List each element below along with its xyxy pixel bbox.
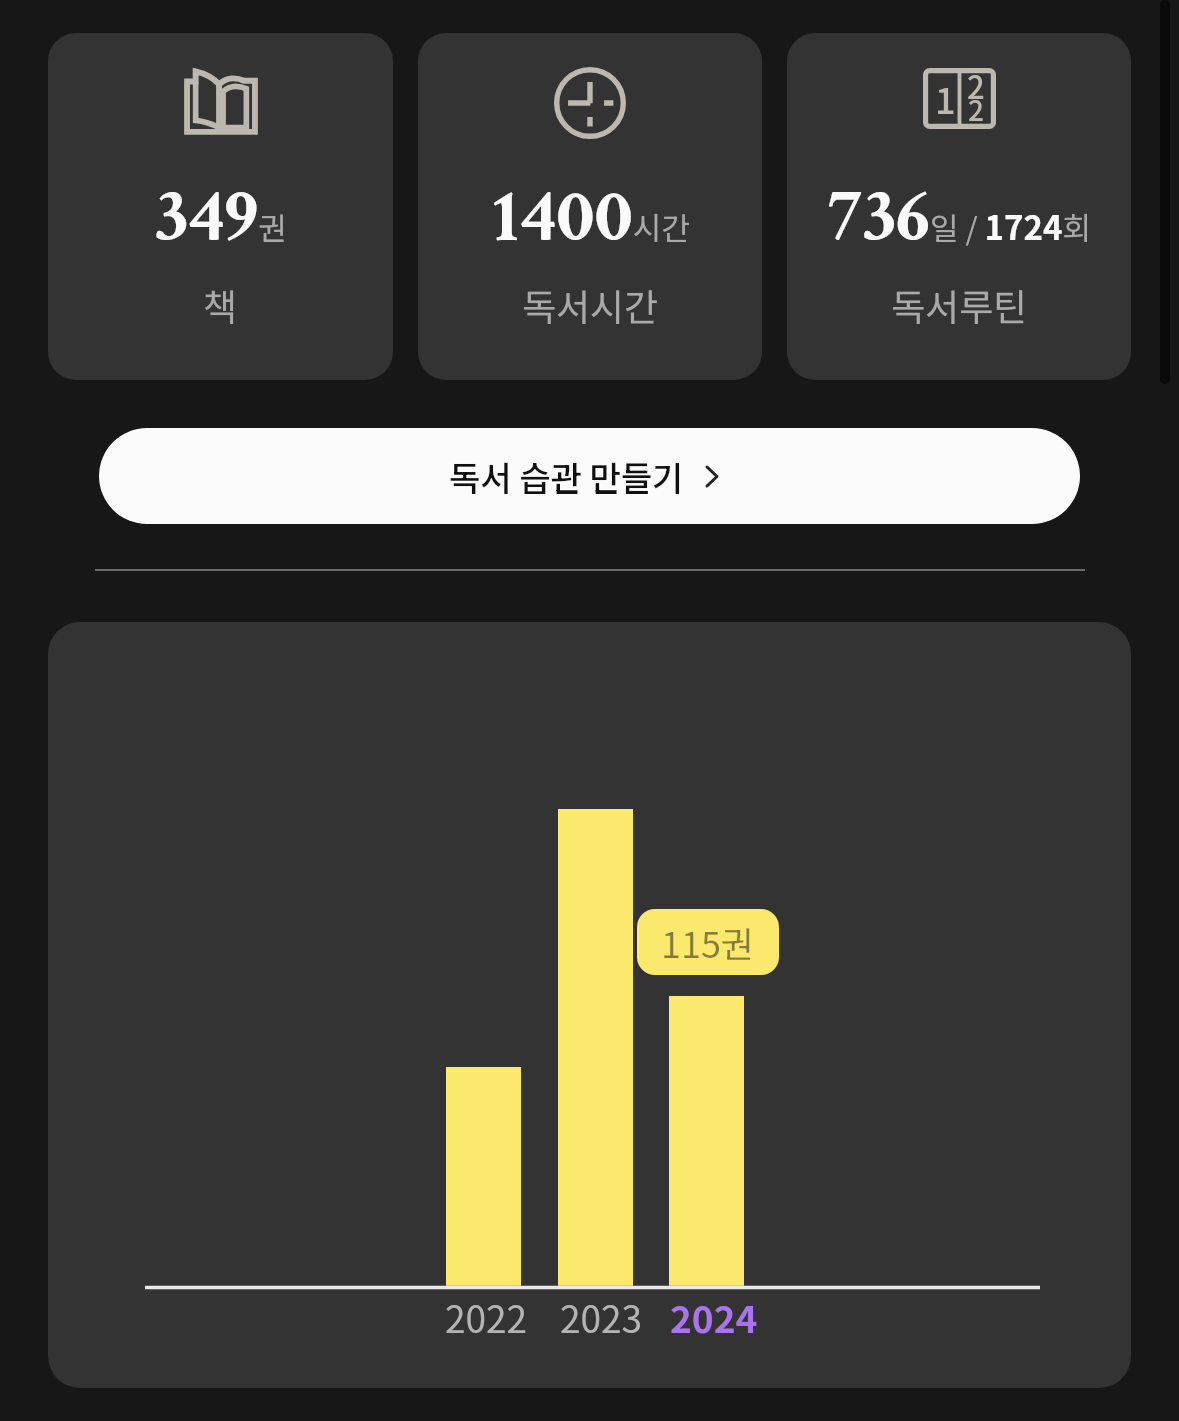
staticText: 1 bbox=[935, 72, 956, 124]
staticText: 2022 bbox=[445, 1290, 528, 1344]
other: Books bbox=[182, 66, 260, 138]
staticText: 독서 습관 만들기 bbox=[449, 452, 684, 501]
staticText: 독서시간 bbox=[522, 278, 659, 332]
staticText: 독서루틴 bbox=[891, 278, 1028, 332]
staticText: 2 bbox=[968, 89, 984, 130]
staticText: 2 bbox=[967, 63, 985, 108]
staticText: 1400시간 bbox=[491, 168, 690, 267]
button[interactable]: Reading time bbox=[418, 33, 762, 380]
button[interactable]: 115권 bbox=[48, 622, 1131, 1388]
staticText: 2024 bbox=[670, 1290, 758, 1344]
other: Reading routine bbox=[923, 68, 996, 129]
staticText: 349권 bbox=[154, 168, 287, 267]
button[interactable]: Books bbox=[48, 33, 393, 380]
other: Reading time bbox=[554, 67, 626, 139]
staticText: 736일 / 1724회 bbox=[827, 168, 1091, 267]
button[interactable]: Reading routine bbox=[787, 33, 1131, 380]
staticText: 115권 bbox=[661, 916, 755, 968]
button[interactable]: 독서 습관 만들기 bbox=[99, 428, 1080, 524]
staticText: 2023 bbox=[560, 1290, 643, 1344]
staticText: 책 bbox=[203, 278, 238, 332]
